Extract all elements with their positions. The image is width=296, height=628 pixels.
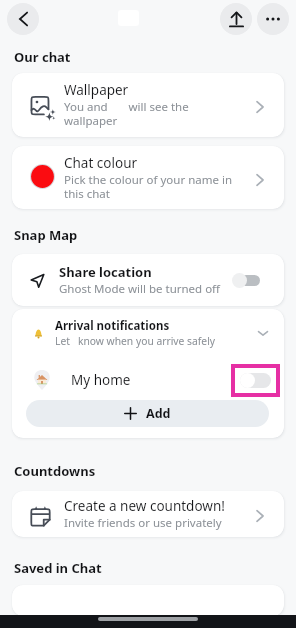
button[interactable]: Share location <box>12 254 284 306</box>
button[interactable]: Chat colour <box>12 146 284 209</box>
button[interactable]: My home <box>12 362 284 398</box>
staticText: Chat colour <box>64 154 138 172</box>
button[interactable]: Add <box>26 400 269 427</box>
staticText: Our chat <box>14 48 71 66</box>
button[interactable]: Arrival notifications <box>12 312 284 354</box>
staticText: Let know when you arrive safely <box>55 334 216 348</box>
staticText: Add <box>146 405 171 422</box>
staticText: Ghost Mode will be turned off <box>59 281 221 297</box>
button[interactable]: More options <box>257 3 289 35</box>
button[interactable]: Back <box>7 3 39 35</box>
staticText: Share location <box>59 263 152 281</box>
staticText: You and will see the wallpaper <box>64 99 189 129</box>
staticText: Arrival notifications <box>55 318 170 334</box>
staticText: Snap Map <box>14 226 78 244</box>
button[interactable]: Wallpaper <box>12 73 284 137</box>
button[interactable]: Share <box>220 3 252 35</box>
staticText: Invite friends or use privately <box>64 515 222 531</box>
button[interactable]: Toggle share location <box>232 272 260 288</box>
staticText: My home <box>71 371 131 389</box>
button[interactable]: Toggle My home arrival notifications <box>240 372 271 389</box>
button[interactable]: Create a new countdown! <box>12 491 284 537</box>
staticText: Countdowns <box>14 462 96 480</box>
staticText: Saved in Chat <box>14 559 102 577</box>
staticText: Create a new countdown! <box>64 497 225 515</box>
staticText: Pick the colour of your name in this cha… <box>64 172 232 202</box>
staticText: Wallpaper <box>64 81 129 99</box>
